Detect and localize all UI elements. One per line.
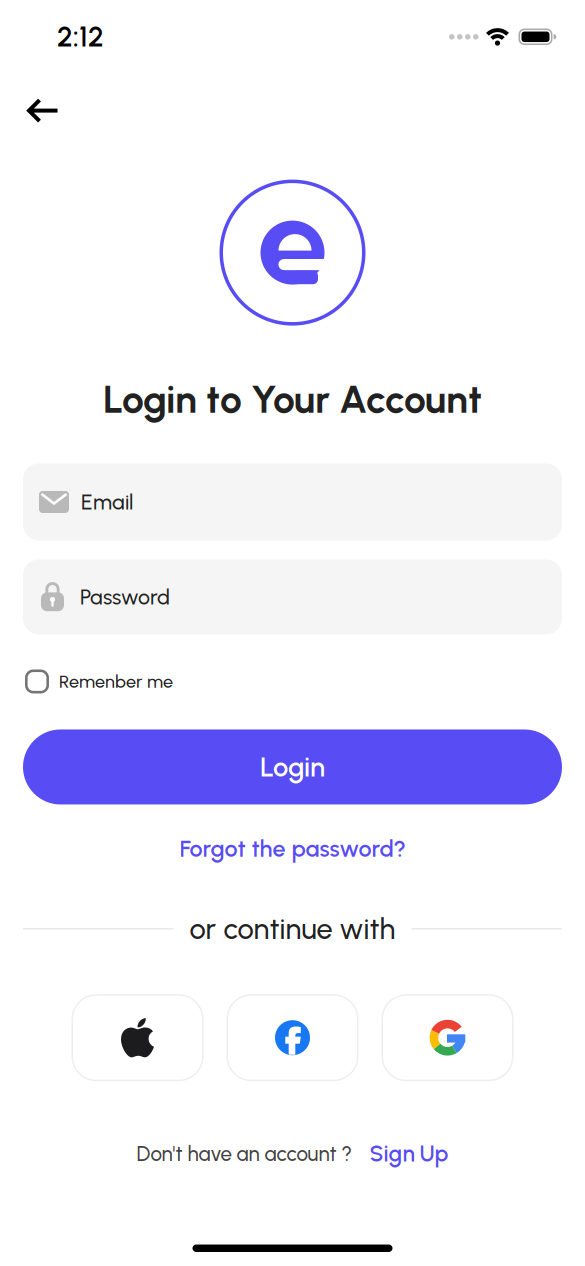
button[interactable]: Sign Up: [369, 1140, 448, 1167]
staticText: Email: [81, 489, 133, 515]
button[interactable]: [26, 99, 60, 123]
button[interactable]: [71, 994, 203, 1081]
staticText: Don't have an account ?: [136, 1141, 352, 1166]
staticText: Sign Up: [369, 1140, 448, 1167]
staticText: Login: [260, 751, 325, 783]
button[interactable]: Remenber me: [25, 669, 173, 693]
staticText: Remenber me: [59, 671, 173, 692]
staticText: Login to Your Account: [103, 376, 482, 422]
staticText: Password: [80, 584, 170, 610]
staticText: 2:12: [57, 20, 104, 54]
button[interactable]: Login: [23, 729, 562, 804]
button[interactable]: [381, 994, 513, 1081]
button[interactable]: Forgot the password?: [179, 834, 405, 862]
staticText: or continue with: [189, 911, 395, 946]
button[interactable]: [226, 994, 358, 1081]
button[interactable]: Email: [23, 463, 562, 540]
staticText: Forgot the password?: [179, 834, 405, 862]
button[interactable]: Password: [23, 559, 562, 634]
